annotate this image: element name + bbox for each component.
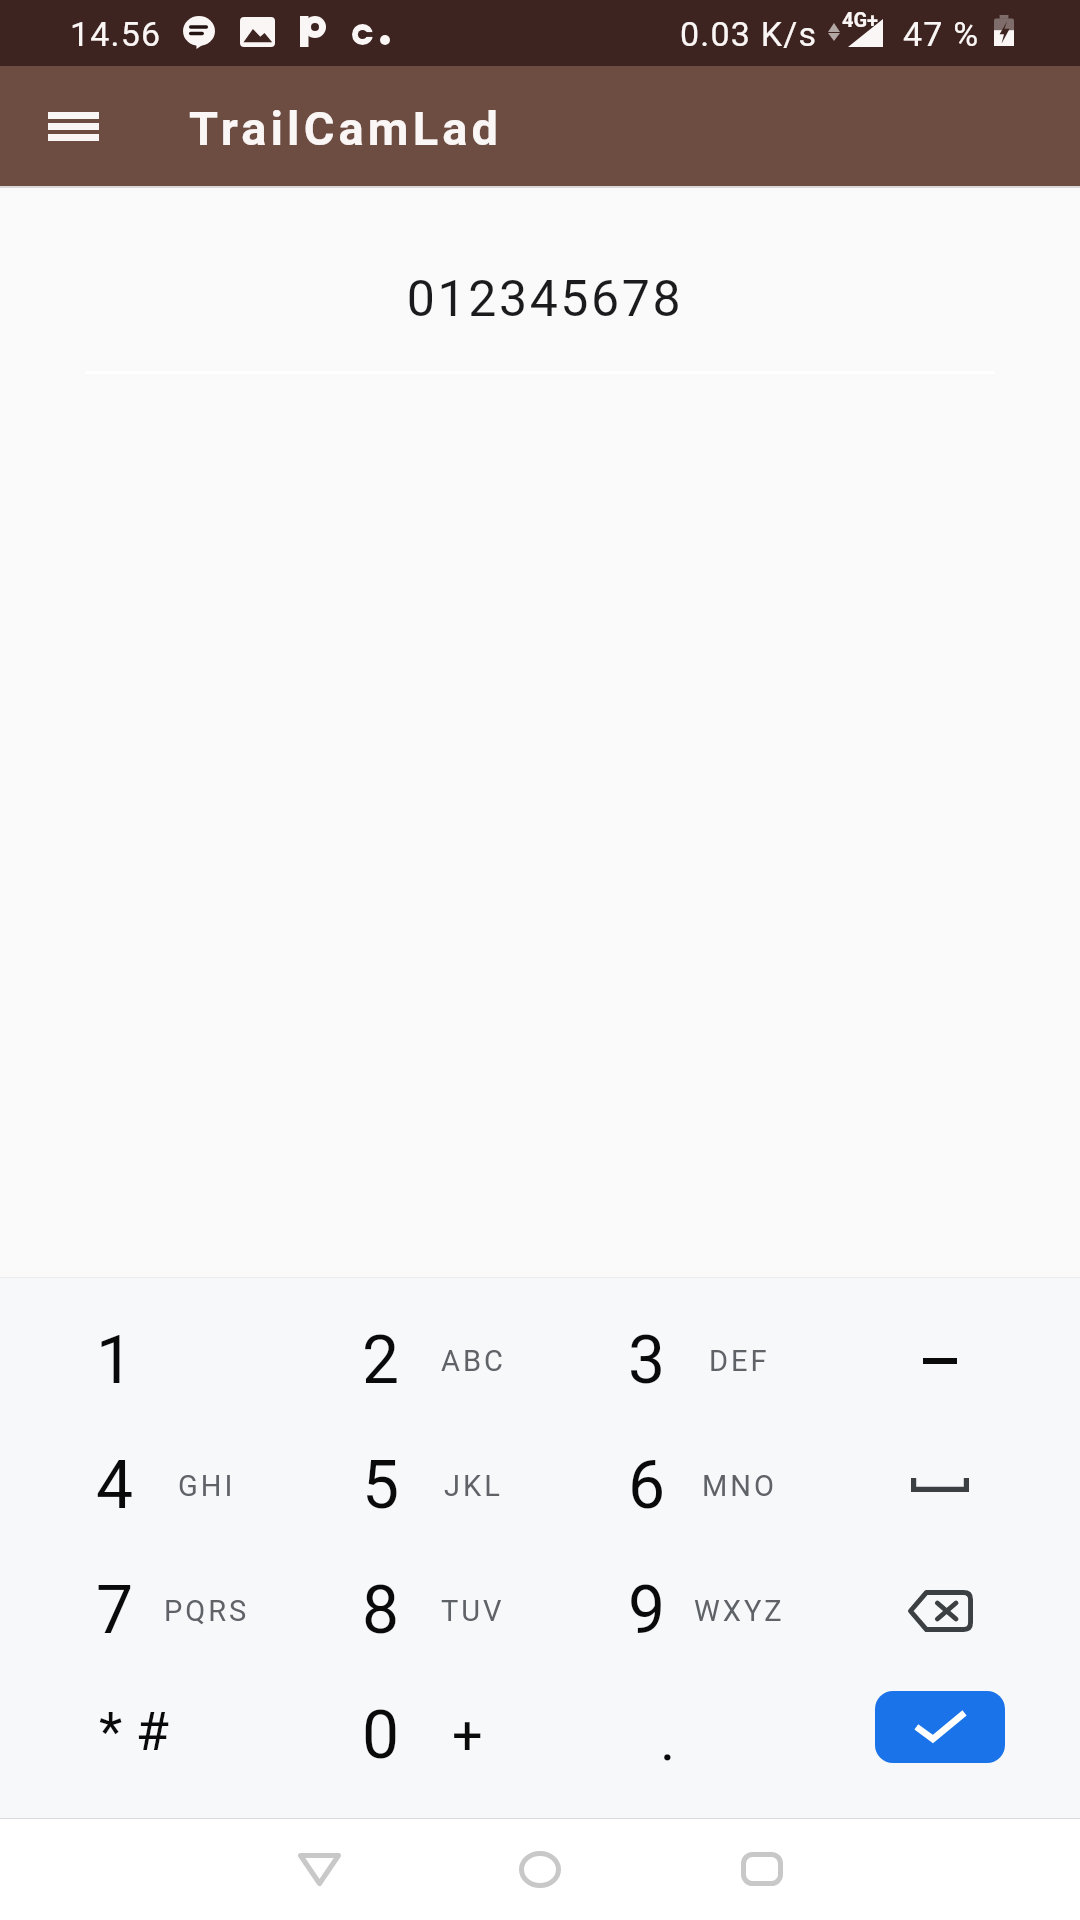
staticText: 5 bbox=[362, 1447, 400, 1524]
button[interactable]: . bbox=[532, 1673, 798, 1798]
button[interactable]: 4 bbox=[0, 1423, 266, 1548]
button[interactable]: Confirm bbox=[875, 1691, 1005, 1763]
staticText: 6 bbox=[628, 1447, 666, 1524]
staticText: 0 bbox=[362, 1697, 400, 1774]
staticText: 4G+ bbox=[842, 8, 879, 31]
staticText: TUV bbox=[441, 1594, 505, 1628]
staticText: 14.56 bbox=[70, 14, 162, 54]
staticText: 0.03 K/s bbox=[680, 14, 818, 54]
button[interactable]: Space bbox=[807, 1423, 1073, 1548]
button[interactable]: 7 bbox=[0, 1548, 266, 1673]
button[interactable]: 5 bbox=[266, 1423, 532, 1548]
staticText: MNO bbox=[702, 1469, 777, 1503]
button[interactable]: 2 bbox=[266, 1298, 532, 1423]
button[interactable]: 8 bbox=[266, 1548, 532, 1673]
button[interactable]: 9 bbox=[532, 1548, 798, 1673]
staticText: . bbox=[660, 1706, 676, 1774]
staticText: TrailCamLad bbox=[189, 101, 503, 156]
button[interactable]: 3 bbox=[532, 1298, 798, 1423]
staticText: 7 bbox=[96, 1572, 134, 1649]
button[interactable]: Recent apps bbox=[707, 1818, 817, 1920]
staticText: 47 % bbox=[903, 14, 980, 54]
staticText: 4 bbox=[96, 1447, 134, 1524]
staticText: ABC bbox=[441, 1344, 506, 1378]
button[interactable]: 6 bbox=[532, 1423, 798, 1548]
button[interactable]: Home bbox=[485, 1818, 595, 1920]
button[interactable]: Backspace bbox=[807, 1548, 1073, 1673]
staticText: 012345678 bbox=[5, 270, 1080, 329]
staticText: 2 bbox=[362, 1322, 400, 1399]
staticText: 8 bbox=[362, 1572, 400, 1649]
staticText: PQRS bbox=[164, 1594, 250, 1628]
staticText: 3 bbox=[628, 1322, 666, 1399]
button[interactable]: * # bbox=[0, 1673, 266, 1798]
staticText: 9 bbox=[628, 1572, 666, 1649]
button[interactable]: 1 bbox=[0, 1298, 266, 1423]
button[interactable]: 0 bbox=[266, 1673, 532, 1798]
button[interactable]: Back bbox=[264, 1818, 374, 1920]
button[interactable]: Open navigation drawer bbox=[35, 88, 111, 164]
staticText: + bbox=[452, 1704, 483, 1767]
staticText: * # bbox=[99, 1700, 169, 1763]
staticText: JKL bbox=[444, 1469, 503, 1503]
staticText: DEF bbox=[709, 1344, 770, 1378]
staticText: GHI bbox=[178, 1469, 236, 1503]
staticText: 1 bbox=[96, 1322, 134, 1399]
staticText: WXYZ bbox=[694, 1594, 785, 1628]
button[interactable]: Dash bbox=[807, 1298, 1073, 1423]
